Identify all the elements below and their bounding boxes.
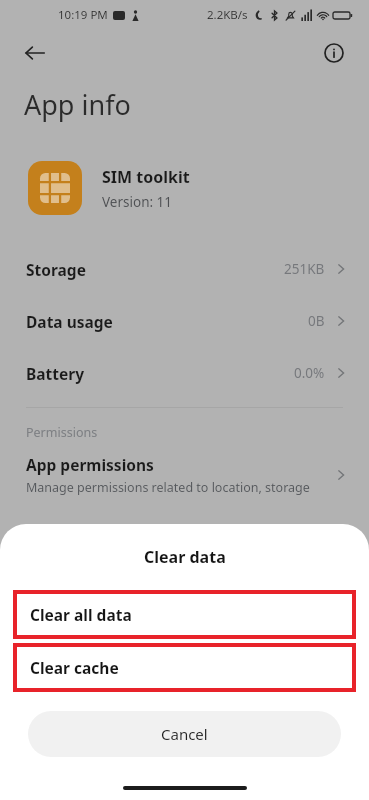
button[interactable]: App info help: [313, 32, 355, 74]
button[interactable]: App permissions: [0, 454, 369, 496]
staticText: 251KB: [284, 260, 325, 278]
button[interactable]: Clear cache: [17, 647, 352, 688]
staticText: Battery: [26, 363, 294, 384]
staticText: Clear data: [144, 546, 226, 568]
staticText: 2.2KB/s: [207, 7, 248, 23]
button[interactable]: Cancel: [28, 711, 341, 757]
staticText: Manage permissions related to location, …: [26, 479, 310, 496]
staticText: 0B: [308, 312, 325, 330]
button[interactable]: Back: [14, 32, 56, 74]
staticText: 10:19 PM: [58, 7, 108, 23]
staticText: Data usage: [26, 311, 308, 332]
staticText: Storage: [26, 259, 284, 280]
staticText: App permissions: [26, 454, 154, 475]
staticText: Clear all data: [30, 604, 132, 625]
staticText: Cancel: [161, 724, 208, 744]
staticText: SIM toolkit: [102, 166, 190, 188]
button[interactable]: Data usage: [0, 295, 369, 347]
staticText: Permissions: [26, 424, 98, 441]
staticText: Clear cache: [30, 657, 119, 678]
button[interactable]: Battery: [0, 347, 369, 399]
staticText: Version: 11: [102, 193, 173, 211]
button[interactable]: Storage: [0, 243, 369, 295]
staticText: 0.0%: [294, 364, 325, 382]
button[interactable]: Clear all data: [17, 594, 352, 635]
staticText: App info: [24, 86, 131, 123]
